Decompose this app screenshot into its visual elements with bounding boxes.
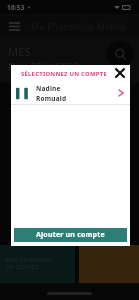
staticText: DE CONSEIL — [6, 263, 41, 270]
button[interactable]: Nadine — [11, 82, 130, 104]
staticText: Ma Pharmacie Mobile — [31, 20, 127, 32]
button[interactable]: Rechercher une pharmacie — [107, 41, 133, 67]
staticText: Romuald — [36, 94, 67, 103]
staticText: Ajouter un compte — [36, 230, 105, 240]
staticText: 16:53 — [7, 3, 25, 12]
staticText: Nadine — [36, 84, 61, 93]
staticText: MES — [8, 44, 31, 59]
button[interactable] — [79, 245, 139, 283]
button[interactable]: MES DEMANDES — [0, 245, 75, 283]
staticText: SÉLECTIONNEZ UN COMPTE — [21, 70, 107, 78]
button[interactable]: Fermer — [113, 66, 127, 80]
button[interactable]: Menu — [6, 18, 22, 34]
staticText: MES DEMANDES — [6, 256, 52, 263]
button[interactable]: Ajouter un compte — [14, 228, 127, 242]
staticText: PHARMACIES — [8, 59, 79, 74]
